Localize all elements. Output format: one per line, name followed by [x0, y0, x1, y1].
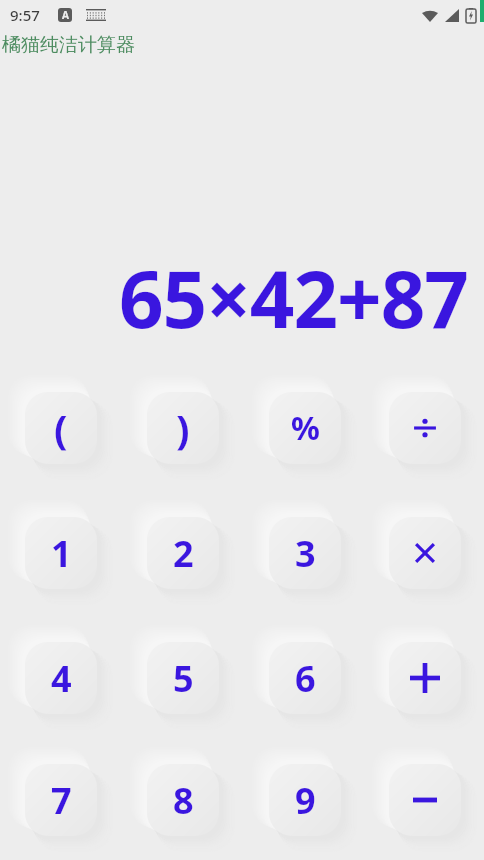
button[interactable]: ×: [366, 490, 484, 615]
staticText: 4: [51, 654, 72, 703]
staticText: 2: [173, 529, 194, 578]
staticText: A: [62, 8, 69, 22]
button[interactable]: 8: [122, 740, 244, 860]
staticText: 6: [295, 654, 316, 703]
button[interactable]: 3: [244, 490, 366, 615]
staticText: 橘猫纯洁计算器: [2, 33, 135, 57]
button[interactable]: 6: [244, 615, 366, 740]
button[interactable]: 1: [0, 490, 122, 615]
staticText: 9:57: [10, 5, 40, 25]
staticText: 65×42+87: [119, 245, 468, 337]
staticText: %: [291, 406, 320, 450]
button[interactable]: ): [122, 365, 244, 490]
button[interactable]: 2: [122, 490, 244, 615]
button[interactable]: (: [0, 365, 122, 490]
button[interactable]: 9: [244, 740, 366, 860]
button[interactable]: 5: [122, 615, 244, 740]
staticText: 8: [173, 776, 194, 825]
button[interactable]: 7: [0, 740, 122, 860]
staticText: 3: [295, 529, 316, 578]
button[interactable]: ÷: [366, 365, 484, 490]
staticText: 7: [51, 776, 72, 825]
button[interactable]: 4: [0, 615, 122, 740]
staticText: 1: [51, 529, 72, 578]
button[interactable]: +: [366, 615, 484, 740]
staticText: 5: [173, 654, 194, 703]
button[interactable]: %: [244, 365, 366, 490]
button[interactable]: -: [366, 740, 484, 860]
staticText: 9: [295, 776, 316, 825]
staticText: (: [54, 401, 68, 455]
staticText: ): [176, 401, 190, 455]
